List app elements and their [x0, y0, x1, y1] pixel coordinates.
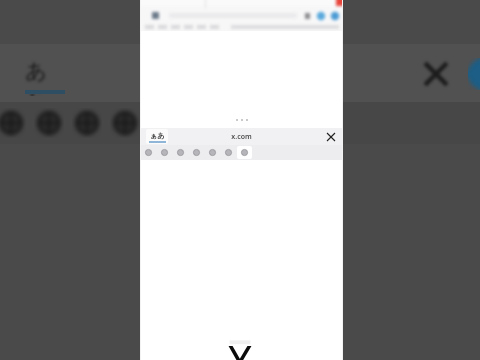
- button[interactable]: ぁあ: [146, 129, 168, 144]
- button[interactable]: [0, 108, 26, 138]
- button[interactable]: Close: [418, 56, 454, 92]
- staticText: ぁあ: [150, 131, 165, 140]
- button[interactable]: [173, 146, 188, 159]
- button[interactable]: [34, 108, 64, 138]
- button[interactable]: [110, 108, 140, 138]
- button[interactable]: Close: [324, 130, 337, 143]
- staticText: ぁあ: [22, 52, 68, 96]
- button[interactable]: [237, 146, 252, 159]
- button[interactable]: [72, 108, 102, 138]
- button[interactable]: [141, 146, 156, 159]
- button[interactable]: [221, 146, 236, 159]
- button[interactable]: [189, 146, 204, 159]
- button[interactable]: [205, 146, 220, 159]
- button[interactable]: X: [227, 336, 253, 360]
- button[interactable]: ぁあ: [22, 52, 68, 96]
- staticText: x.com: [231, 132, 252, 142]
- button[interactable]: [157, 146, 172, 159]
